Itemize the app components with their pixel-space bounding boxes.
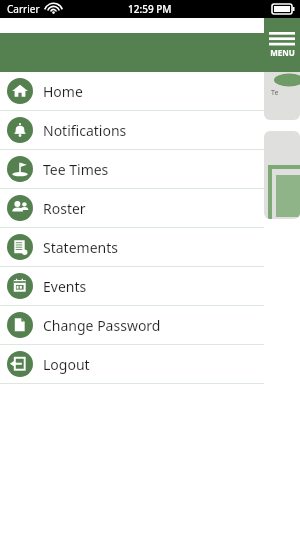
staticText: Statements xyxy=(43,238,118,257)
staticText: Home xyxy=(43,82,83,101)
button[interactable]: Roster xyxy=(0,189,264,228)
button[interactable]: Notifications xyxy=(0,111,264,150)
staticText: Tee Times xyxy=(43,160,109,179)
button[interactable]: Events xyxy=(0,267,264,306)
staticText: Te xyxy=(271,88,279,98)
button[interactable]: Menu xyxy=(264,18,300,72)
staticText: Carrier xyxy=(7,2,40,16)
button[interactable]: Statements xyxy=(0,228,264,267)
staticText: Logout xyxy=(43,355,90,374)
button[interactable]: Te xyxy=(264,37,300,120)
staticText: Events xyxy=(43,277,87,296)
staticText: MENU xyxy=(270,47,295,58)
staticText: 12:59 PM xyxy=(128,2,172,16)
button[interactable]: Home xyxy=(0,72,264,111)
button[interactable]: Change Password xyxy=(0,306,264,345)
staticText: Change Password xyxy=(43,316,161,335)
button[interactable] xyxy=(264,131,300,219)
button[interactable]: Logout xyxy=(0,345,264,384)
button[interactable]: Tee Times xyxy=(0,150,264,189)
staticText: Notifications xyxy=(43,121,127,140)
staticText: Roster xyxy=(43,199,86,218)
